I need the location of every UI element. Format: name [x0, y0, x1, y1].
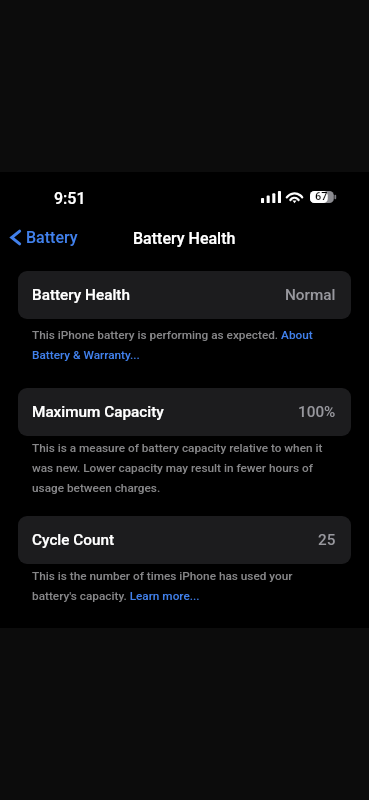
staticText: This is the number of times iPhone has u… [32, 569, 337, 603]
staticText: Maximum Capacity [32, 403, 164, 421]
staticText: 9:51 [54, 189, 86, 208]
staticText: 25 [318, 531, 336, 549]
button[interactable]: Battery Health [18, 271, 351, 319]
staticText: Battery Health [133, 229, 236, 248]
staticText: 100% [298, 403, 336, 421]
staticText: Battery [26, 228, 78, 247]
staticText: 67 [315, 190, 328, 203]
button[interactable]: Battery [4, 218, 86, 257]
staticText: This iPhone battery is performing as exp… [32, 328, 337, 362]
staticText: This is a measure of battery capacity re… [32, 441, 337, 495]
staticText: Battery Health [32, 286, 130, 304]
button[interactable]: Cycle Count [18, 516, 351, 564]
staticText: Normal [285, 286, 336, 304]
staticText: Cycle Count [32, 531, 115, 549]
button[interactable]: Maximum Capacity [18, 388, 351, 436]
